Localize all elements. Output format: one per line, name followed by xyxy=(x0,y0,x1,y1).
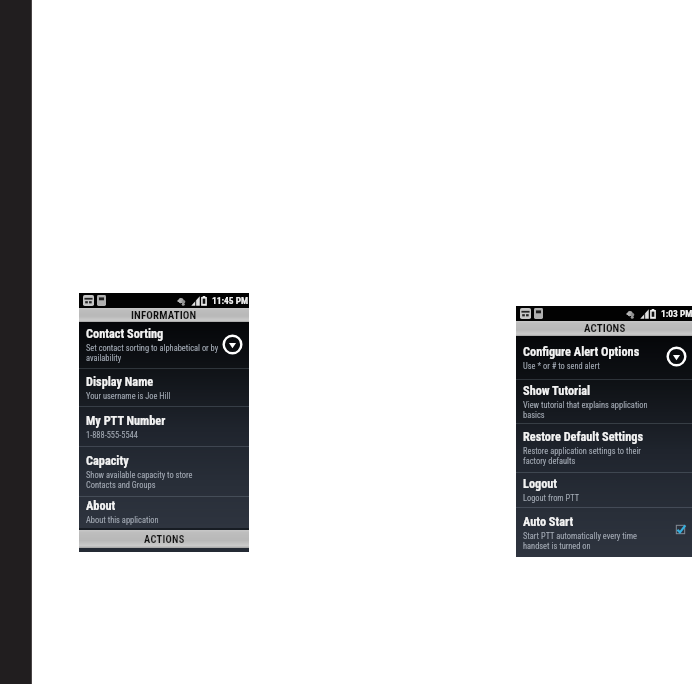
other: Expand xyxy=(222,334,243,355)
staticText: availability xyxy=(86,353,122,363)
staticText: 1:03 PM xyxy=(661,308,692,319)
button[interactable]: Capacity xyxy=(79,447,249,496)
staticText: Restore Default Settings xyxy=(523,430,644,444)
button[interactable]: Configure Alert Options xyxy=(516,336,692,379)
staticText: handset is turned on xyxy=(523,541,591,551)
staticText: Restore application settings to their xyxy=(523,446,641,456)
button[interactable]: Restore Default Settings xyxy=(516,424,692,472)
staticText: Show available capacity to store xyxy=(86,470,193,480)
staticText: Auto Start xyxy=(523,515,574,529)
staticText: basics xyxy=(523,410,545,420)
staticText: Use * or # to send alert xyxy=(523,361,600,371)
button[interactable]: Auto Start xyxy=(516,508,692,557)
staticText: Start PTT automatically every time xyxy=(523,531,637,541)
staticText: View tutorial that explains application xyxy=(523,400,648,410)
staticText: Contacts and Groups xyxy=(86,480,156,490)
staticText: My PTT Number xyxy=(86,414,166,428)
button[interactable]: Contact Sorting xyxy=(79,322,249,368)
staticText: Your username is Joe Hill xyxy=(86,391,171,401)
staticText: INFORMATION xyxy=(131,309,197,322)
staticText: Logout xyxy=(523,477,558,491)
other: Expand xyxy=(666,346,687,367)
staticText: ACTIONS xyxy=(584,322,626,335)
staticText: factory defaults xyxy=(523,456,576,466)
staticText: Contact Sorting xyxy=(86,327,164,341)
button[interactable]: ACTIONS xyxy=(79,530,249,548)
button[interactable]: Logout xyxy=(516,473,692,507)
staticText: Capacity xyxy=(86,454,129,468)
staticText: 11:45 PM xyxy=(212,295,249,306)
staticText: About this application xyxy=(86,515,159,525)
staticText: Show Tutorial xyxy=(523,384,591,398)
staticText: Configure Alert Options xyxy=(523,345,640,359)
staticText: ACTIONS xyxy=(144,533,185,545)
button[interactable]: Show Tutorial xyxy=(516,380,692,423)
button[interactable]: Display Name xyxy=(79,369,249,406)
other: Auto Start enabled xyxy=(675,524,686,535)
staticText: 1-888-555-5544 xyxy=(86,430,138,440)
staticText: Set contact sorting to alphabetical or b… xyxy=(86,343,219,353)
staticText: Display Name xyxy=(86,375,154,389)
button[interactable]: About xyxy=(79,497,249,527)
staticText: About xyxy=(86,499,116,513)
button[interactable]: My PTT Number xyxy=(79,407,249,446)
staticText: Logout from PTT xyxy=(523,493,580,503)
